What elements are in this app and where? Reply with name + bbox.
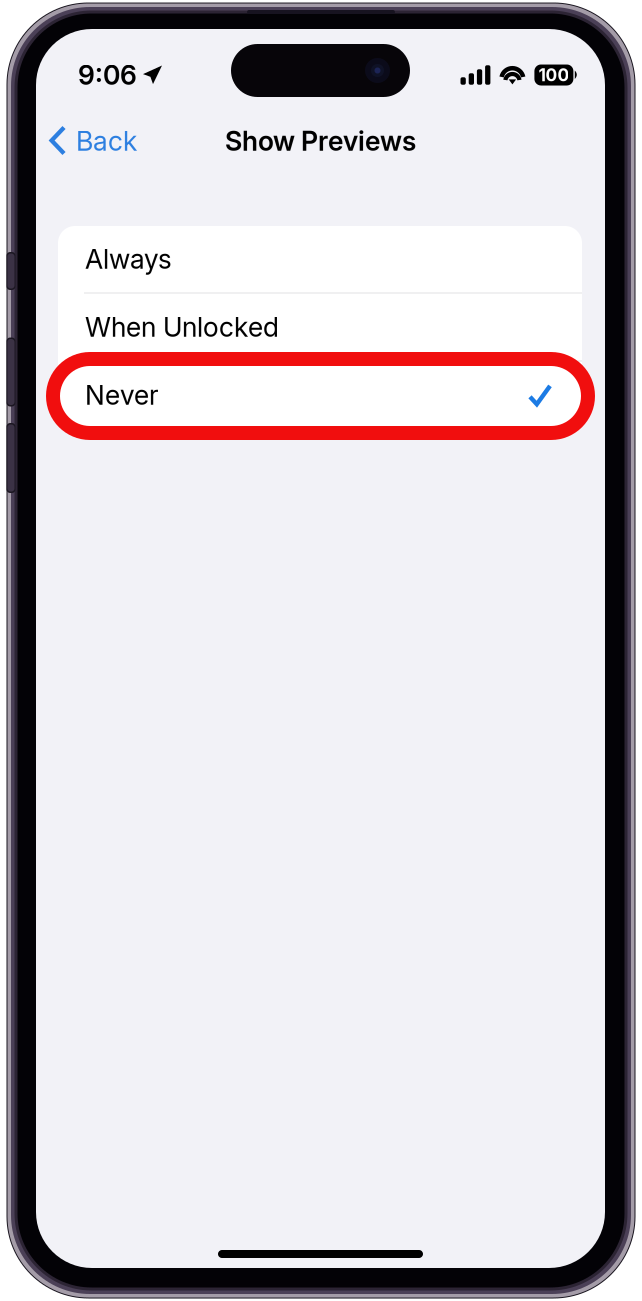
staticText: 9:06 [78, 59, 137, 91]
staticText: Never [85, 379, 159, 411]
staticText: When Unlocked [85, 311, 279, 343]
button[interactable]: When Unlocked [58, 294, 582, 360]
button[interactable]: Back [36, 115, 149, 167]
staticText: Always [85, 243, 172, 275]
button[interactable]: Never [58, 362, 582, 428]
staticText: Show Previews [225, 125, 416, 157]
button[interactable]: Always [58, 226, 582, 292]
staticText: 100 [538, 64, 569, 85]
staticText: Back [76, 125, 137, 157]
